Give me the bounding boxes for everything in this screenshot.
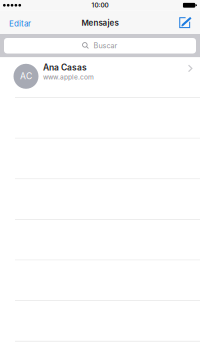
staticText: Buscar	[93, 41, 117, 50]
staticText: Editar	[9, 19, 31, 28]
button[interactable]: Buscar	[4, 38, 196, 53]
button[interactable]: Editar	[0, 10, 40, 34]
staticText: Ana Casas	[43, 62, 87, 72]
staticText: AC	[20, 71, 32, 81]
staticText: 10:00	[91, 1, 108, 9]
button[interactable]: AC	[0, 57, 200, 98]
staticText: www.apple.com	[43, 73, 94, 81]
button[interactable]: Redactar mensaje nuevo	[170, 10, 200, 34]
staticText: Mensajes	[81, 18, 118, 28]
